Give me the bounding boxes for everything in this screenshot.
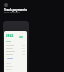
staticText: from anywhere — [4, 11, 20, 14]
button[interactable]: Status — [19, 36, 23, 38]
staticText: Track payments — [4, 8, 27, 12]
button[interactable] — [6, 62, 25, 65]
button[interactable] — [6, 65, 25, 68]
button[interactable]: Logo — [4, 3, 8, 7]
button[interactable] — [6, 44, 25, 47]
button[interactable] — [6, 47, 25, 50]
button[interactable] — [6, 53, 25, 56]
button[interactable] — [6, 68, 25, 71]
staticText: $842 — [6, 34, 14, 38]
button[interactable] — [6, 50, 25, 53]
